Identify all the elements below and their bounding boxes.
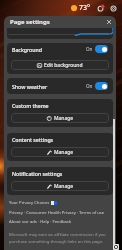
button[interactable]: Manage [11,181,109,191]
staticText: Notification settings [12,170,63,177]
staticText: Microsoft may earn an affiliate commissi… [9,232,113,245]
staticText: Manage [54,115,74,122]
other: Show weather toggle [95,82,108,90]
staticText: Background [12,46,43,53]
button[interactable]: Manage [11,113,109,123]
staticText: On [86,83,93,89]
staticText: Privacy · Consumer Health Privacy · Term… [9,210,105,216]
button[interactable]: Close [104,17,114,27]
staticText: Custom theme [12,102,49,109]
staticText: Manage [54,183,74,190]
button[interactable]: Show weather [12,78,108,94]
staticText: About our ads · Help · Feedback [9,219,72,225]
other: Background toggle [95,45,108,53]
staticText: 73° [79,3,91,13]
staticText: Content settings [12,136,54,143]
button[interactable]: Manage [11,147,109,157]
button[interactable]: Visual search [113,244,119,250]
button[interactable]: Edit background [11,60,109,70]
button[interactable]: Your Privacy Choices [9,200,57,206]
staticText: Your Privacy Choices [9,200,50,206]
staticText: On [86,46,93,52]
button[interactable]: Background [12,43,108,55]
staticText: Show weather [12,83,48,90]
staticText: Edit background [44,62,83,69]
staticText: Page settings [10,18,50,26]
staticText: Manage [54,149,74,156]
button[interactable]: Settings [109,4,118,13]
button[interactable]: Notifications [96,4,105,13]
